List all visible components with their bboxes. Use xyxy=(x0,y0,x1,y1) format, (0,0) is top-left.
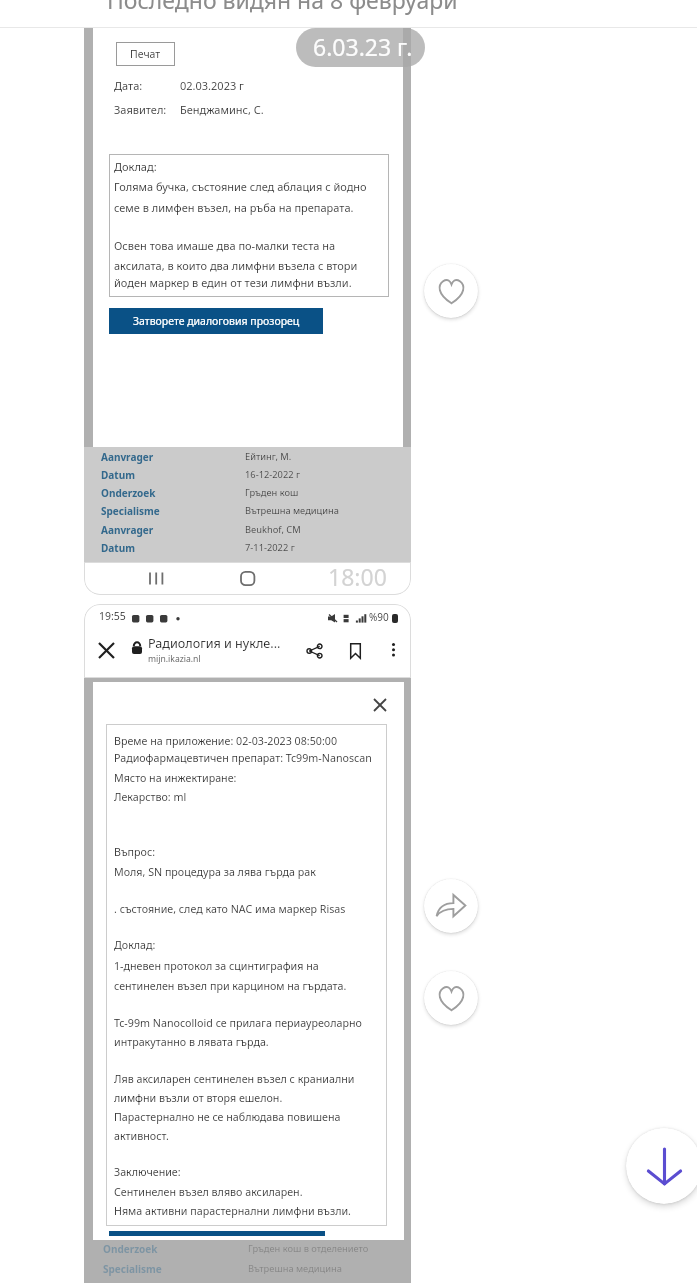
staticText: Beukhof, CM xyxy=(245,523,301,536)
staticText: активност. xyxy=(114,1129,169,1144)
staticText: 02.03.2023 г xyxy=(180,78,244,93)
staticText: %90 xyxy=(369,610,389,624)
button[interactable]: Share page xyxy=(299,636,329,666)
staticText: Onderzoek xyxy=(103,1242,158,1256)
staticText: Datum xyxy=(101,541,135,555)
staticText: Specialisme xyxy=(103,1262,162,1276)
staticText: Aanvrager xyxy=(101,450,154,464)
staticText: mijn.ikazia.nl xyxy=(148,653,201,665)
button[interactable]: Печат xyxy=(116,42,175,66)
staticText: 7-11-2022 г xyxy=(245,541,295,554)
staticText: Доклад: xyxy=(114,938,156,953)
button[interactable]: Затворете диалоговия прозорец xyxy=(109,308,323,334)
staticText: Радиология и нукле... xyxy=(148,635,281,652)
staticText: Място на инжектиране: xyxy=(114,771,237,786)
staticText: Сентинелен възел вляво аксиларен. xyxy=(114,1185,303,1200)
staticText: 1-дневен протокол за сцинтиграфия на xyxy=(114,959,319,974)
staticText: 16-12-2022 г xyxy=(245,468,301,481)
staticText: Aanvrager xyxy=(101,523,154,537)
staticText: 6.03.23 г. xyxy=(313,31,413,62)
staticText: Заявител: xyxy=(114,102,167,117)
staticText: Последно видян на 8 февруари xyxy=(107,0,458,15)
staticText: Печат xyxy=(130,47,161,61)
staticText: Specialisme xyxy=(101,504,160,518)
staticText: Гръден кош xyxy=(245,486,299,499)
button[interactable]: Bookmark xyxy=(340,636,370,666)
staticText: Въпрос: xyxy=(114,845,156,860)
staticText: Гръден кош в отделението xyxy=(248,1242,369,1255)
staticText: Моля, SN процедура за лява гърда рак xyxy=(114,865,316,880)
staticText: Datum xyxy=(101,468,135,482)
staticText: Парастернално не се наблюдава повишена xyxy=(114,1110,341,1125)
staticText: Радиофармацевтичен препарат: Tc99m-Nanos… xyxy=(114,751,372,766)
staticText: Освен това имаше два по-малки теста на xyxy=(114,238,336,253)
staticText: Ляв аксиларен сентинелен възел с краниал… xyxy=(114,1072,355,1087)
staticText: Заключение: xyxy=(114,1165,181,1180)
staticText: Затворете диалоговия прозорец xyxy=(133,314,300,328)
staticText: сентинелен възел при карцином на гърдата… xyxy=(114,979,347,994)
staticText: Доклад: xyxy=(114,159,157,174)
button[interactable]: Scroll to bottom xyxy=(626,1128,697,1204)
staticText: Голяма бучка, състояние след аблация с й… xyxy=(114,179,367,194)
button[interactable]: Like xyxy=(424,971,478,1025)
staticText: Вътрешна медицина xyxy=(245,504,339,517)
staticText: Време на приложение: 02-03-2023 08:50:00 xyxy=(114,734,338,749)
staticText: Бенджаминс, С. xyxy=(180,102,264,117)
staticText: интракутанно в лявата гърда. xyxy=(114,1035,269,1050)
staticText: йоден маркер в един от тези лимфни възли… xyxy=(114,275,352,290)
staticText: Onderzoek xyxy=(101,486,156,500)
staticText: Вътрешна медицина xyxy=(248,1262,342,1275)
button[interactable]: Like xyxy=(424,264,478,318)
staticText: Tc-99m Nanocolloid се прилага периауреол… xyxy=(114,1016,362,1031)
staticText: Ейтинг, М. xyxy=(245,450,292,463)
staticText: 18:00 xyxy=(328,562,387,592)
staticText: Лекарство: ml xyxy=(114,790,187,805)
button[interactable]: Close tab xyxy=(90,634,122,666)
button[interactable]: Share xyxy=(424,879,478,933)
button[interactable]: More options xyxy=(379,636,407,664)
staticText: аксилата, в които два лимфни възела с вт… xyxy=(114,258,358,273)
staticText: 19:55 xyxy=(99,609,126,623)
staticText: лимфни възли от вторя ешелон. xyxy=(114,1091,283,1106)
staticText: Няма активни парастернални лимфни възли. xyxy=(114,1204,351,1219)
staticText: . състояние, след като NAC има маркер Ri… xyxy=(114,902,346,917)
button[interactable]: Close dialog xyxy=(367,692,392,717)
staticText: Дата: xyxy=(114,78,143,93)
staticText: семе в лимфен възел, на ръба на препарат… xyxy=(114,200,354,215)
